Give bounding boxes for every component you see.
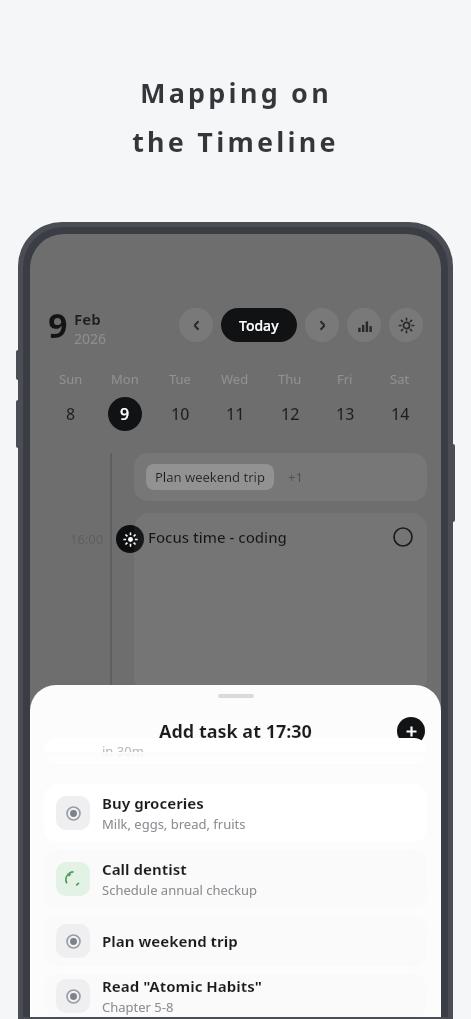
staticText: Add task at 17:30 xyxy=(159,719,312,744)
staticText: 10 xyxy=(171,403,190,425)
staticText: 8 xyxy=(66,403,76,425)
staticText: Mapping on xyxy=(140,74,332,111)
button[interactable]: Sat xyxy=(372,370,427,431)
staticText: the Timeline xyxy=(132,123,339,160)
button[interactable]: Read "Atomic Habits" xyxy=(44,974,427,1017)
staticText: 2026 xyxy=(74,329,107,348)
staticText: 9 xyxy=(48,302,68,348)
button[interactable]: Plan weekend trip xyxy=(44,916,427,966)
button[interactable]: Statistics xyxy=(347,308,381,342)
button[interactable]: Plan weekend trip xyxy=(134,453,427,501)
staticText: Today xyxy=(239,316,279,335)
button[interactable]: Fri xyxy=(317,370,372,431)
staticText: Schedule annual checkup xyxy=(102,881,258,899)
staticText: Sun xyxy=(59,370,83,388)
button[interactable]: Tue xyxy=(152,370,207,431)
staticText: Tue xyxy=(169,370,191,388)
staticText: Call dentist xyxy=(102,859,187,879)
staticText: +1 xyxy=(288,468,303,486)
button[interactable]: Next day xyxy=(305,308,339,342)
button[interactable]: Wed xyxy=(207,370,262,431)
staticText: Plan weekend trip xyxy=(102,931,238,951)
staticText: Wed xyxy=(221,370,249,388)
staticText: Chapter 5-8 xyxy=(102,998,174,1016)
staticText: Plan weekend trip xyxy=(155,468,265,486)
staticText: Fri xyxy=(337,370,353,388)
button[interactable]: Previous day xyxy=(179,308,213,342)
button[interactable]: Buy groceries xyxy=(44,784,427,842)
staticText: Sat xyxy=(390,370,410,388)
button[interactable]: Focus time - coding xyxy=(134,513,427,693)
button[interactable]: Add task xyxy=(397,717,425,745)
staticText: Mon xyxy=(111,370,139,388)
staticText: Read "Atomic Habits" xyxy=(102,976,262,996)
button[interactable]: Call dentist xyxy=(44,850,427,908)
staticText: in 30m xyxy=(102,742,144,760)
button[interactable]: Thu xyxy=(262,370,317,431)
button[interactable]: Mon xyxy=(98,370,152,431)
staticText: 14 xyxy=(391,403,410,425)
button[interactable]: Today xyxy=(221,308,297,342)
staticText: Feb xyxy=(74,309,101,329)
button[interactable]: Sun xyxy=(44,370,98,431)
staticText: Milk, eggs, bread, fruits xyxy=(102,815,246,833)
staticText: Thu xyxy=(278,370,302,388)
staticText: Buy groceries xyxy=(102,793,204,813)
staticText: 9 xyxy=(120,403,130,425)
staticText: 13 xyxy=(336,403,355,425)
button[interactable]: Settings xyxy=(389,308,423,342)
staticText: 16:00 xyxy=(70,530,104,548)
staticText: 11 xyxy=(226,403,245,425)
staticText: 12 xyxy=(281,403,300,425)
staticText: Focus time - coding xyxy=(148,527,287,547)
